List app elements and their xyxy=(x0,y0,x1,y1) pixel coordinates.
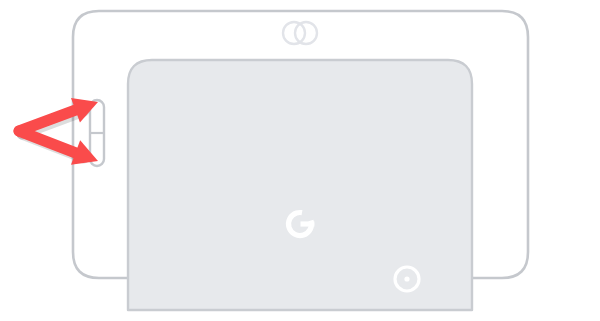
button[interactable]: Tablet side button illustration xyxy=(0,0,600,321)
